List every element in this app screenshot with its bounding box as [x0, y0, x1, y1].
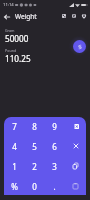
staticText: 2 [32, 161, 37, 172]
button[interactable]: Favorite [79, 11, 89, 21]
button[interactable]: Copy [65, 156, 86, 176]
button[interactable]: 5 [24, 136, 44, 156]
staticText: 50000 [5, 33, 29, 44]
button[interactable]: % [4, 176, 24, 196]
staticText: 7 [12, 121, 17, 132]
staticText: 1 [12, 161, 17, 172]
staticText: 6 [52, 141, 57, 152]
button[interactable]: Unit grid [59, 11, 69, 21]
staticText: . [53, 181, 56, 192]
button[interactable]: 0 [24, 176, 44, 196]
staticText: 9 [52, 121, 57, 132]
button[interactable]: 7 [4, 117, 24, 136]
staticText: 4 [12, 141, 17, 152]
button[interactable]: Swap units [73, 40, 86, 53]
button[interactable]: Backspace [65, 117, 86, 136]
button[interactable]: 2 [24, 156, 44, 176]
button[interactable]: 6 [44, 136, 65, 156]
button[interactable]: 3 [44, 156, 65, 176]
button[interactable]: Clear [65, 136, 86, 156]
staticText: 110.25 [5, 53, 31, 64]
staticText: Pound [5, 48, 17, 53]
button[interactable]: 1 [4, 156, 24, 176]
staticText: 8 [32, 121, 37, 132]
staticText: 11:14 [3, 2, 14, 8]
button[interactable]: 8 [24, 117, 44, 136]
staticText: 5 [32, 141, 37, 152]
button[interactable]: History [69, 11, 79, 21]
button[interactable]: 4 [4, 136, 24, 156]
button[interactable]: . [44, 176, 65, 196]
staticText: 3 [52, 161, 57, 172]
button[interactable]: 9 [44, 117, 65, 136]
staticText: % [11, 181, 18, 192]
staticText: 0 [32, 181, 37, 192]
staticText: Gram [5, 28, 15, 33]
button[interactable]: Paste [65, 176, 86, 196]
staticText: Weight [15, 12, 37, 21]
button[interactable]: Back [1, 11, 12, 22]
